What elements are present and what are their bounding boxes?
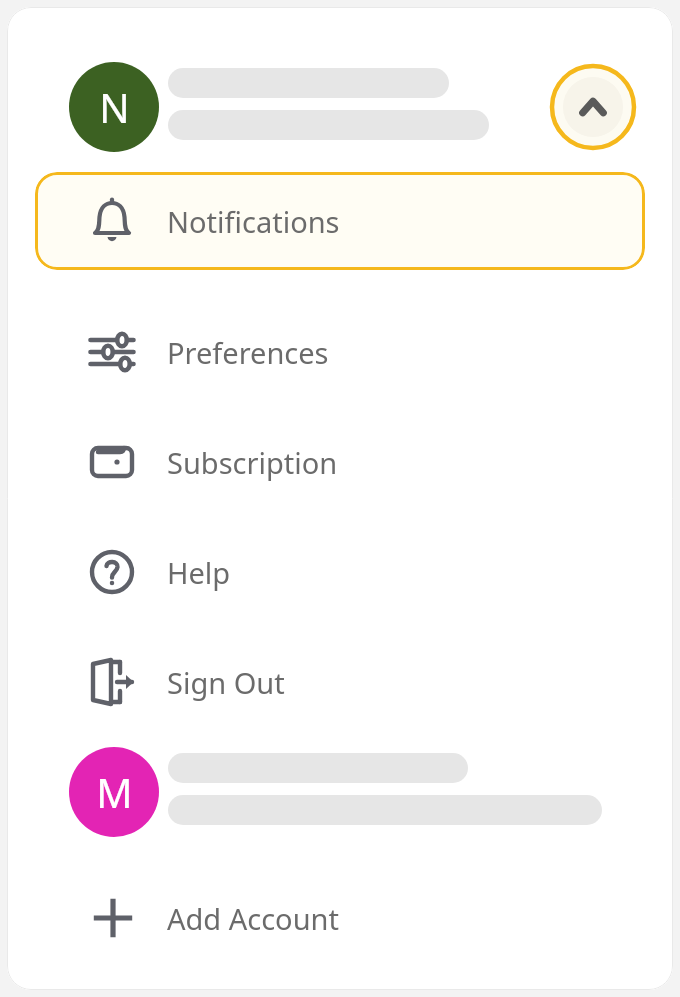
button[interactable]: Preferences bbox=[35, 303, 645, 401]
button[interactable]: Collapse account list bbox=[548, 62, 638, 152]
staticText: Sign Out bbox=[167, 663, 285, 702]
button[interactable]: M bbox=[35, 742, 645, 842]
staticText: M bbox=[96, 765, 133, 819]
button[interactable]: Help bbox=[35, 523, 645, 621]
button[interactable]: N bbox=[69, 62, 159, 152]
button[interactable]: Sign Out bbox=[35, 633, 645, 731]
button[interactable]: Add Account bbox=[35, 873, 645, 963]
staticText: Add Account bbox=[167, 899, 339, 938]
staticText: N bbox=[99, 80, 130, 134]
button[interactable]: Subscription bbox=[35, 413, 645, 511]
staticText: Subscription bbox=[167, 443, 338, 482]
button[interactable]: Notifications bbox=[35, 172, 645, 270]
staticText: Notifications bbox=[167, 202, 340, 241]
staticText: Help bbox=[167, 553, 231, 592]
staticText: Preferences bbox=[167, 333, 329, 372]
